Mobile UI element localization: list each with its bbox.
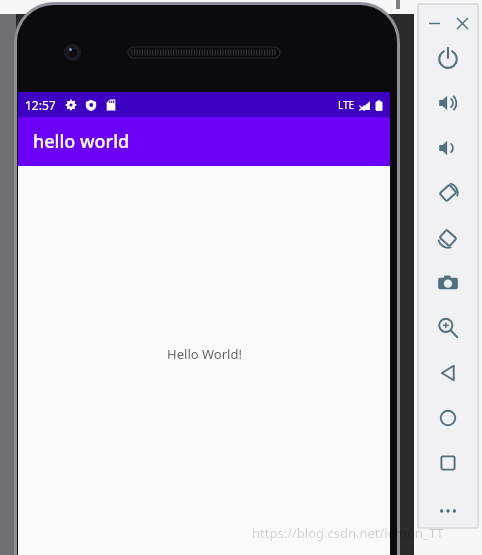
button[interactable]: Volume down	[432, 132, 464, 164]
button[interactable]: Volume up	[432, 87, 464, 119]
button[interactable]: Back	[432, 357, 464, 389]
button[interactable]: Rotate left	[432, 177, 464, 209]
button[interactable]: Overview	[432, 447, 464, 479]
button[interactable]: Power	[432, 42, 464, 74]
button[interactable]: Rotate right	[432, 222, 464, 254]
button[interactable]: Minimize	[423, 12, 445, 34]
button[interactable]: More	[432, 495, 464, 527]
staticText: hello world	[33, 129, 130, 154]
staticText: Hello World!	[167, 345, 242, 363]
staticText: LTE	[338, 98, 355, 112]
button[interactable]: hello world	[18, 117, 390, 166]
staticText: https://blog.csdn.net/lemon_TT	[252, 524, 444, 542]
button[interactable]: Screenshot	[432, 267, 464, 299]
button[interactable]: Zoom	[432, 312, 464, 344]
button[interactable]: Close	[451, 12, 473, 34]
button[interactable]: Home	[432, 402, 464, 434]
staticText: 12:57	[25, 97, 56, 113]
